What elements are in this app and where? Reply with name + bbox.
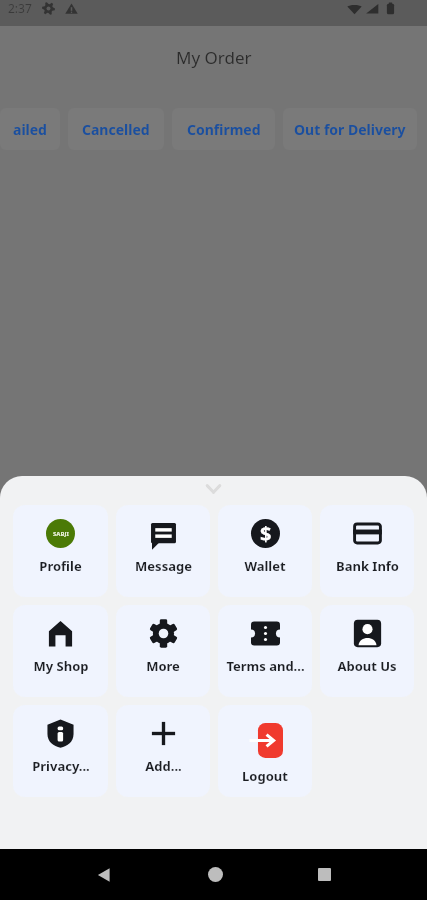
staticText: SABJI (53, 530, 69, 538)
staticText: Bank Info (336, 557, 399, 575)
staticText: ailed (13, 120, 47, 139)
staticText: Privacy... (32, 757, 90, 775)
staticText: Logout (242, 767, 288, 785)
button[interactable]: More (116, 605, 210, 697)
staticText: Profile (39, 557, 82, 575)
staticText: Wallet (244, 557, 286, 575)
button[interactable]: Terms and... (218, 605, 312, 697)
button[interactable]: Privacy... (13, 705, 108, 797)
staticText: My Order (176, 46, 252, 69)
button[interactable]: Logout (218, 705, 312, 797)
staticText: Message (135, 557, 192, 575)
staticText: $ (260, 520, 272, 547)
button[interactable]: About Us (320, 605, 414, 697)
button[interactable]: Confirmed (172, 108, 275, 150)
staticText: Out for Delivery (294, 120, 406, 139)
button[interactable]: Out for Delivery (283, 108, 417, 150)
staticText: Confirmed (187, 120, 261, 139)
button[interactable]: ailed (0, 108, 60, 150)
button[interactable]: $ (218, 505, 312, 597)
button[interactable]: Bank Info (320, 505, 414, 597)
button[interactable]: SABJI (13, 505, 108, 597)
staticText: Terms and... (226, 657, 305, 675)
staticText: About Us (337, 657, 397, 675)
staticText: Add... (145, 757, 182, 775)
button[interactable]: Cancelled (68, 108, 164, 150)
staticText: More (146, 657, 180, 675)
staticText: 2:37 (8, 0, 32, 16)
button[interactable]: Message (116, 505, 210, 597)
staticText: My Shop (33, 657, 89, 675)
button[interactable]: My Shop (13, 605, 108, 697)
button[interactable]: Add... (116, 705, 210, 797)
staticText: Cancelled (82, 120, 150, 139)
